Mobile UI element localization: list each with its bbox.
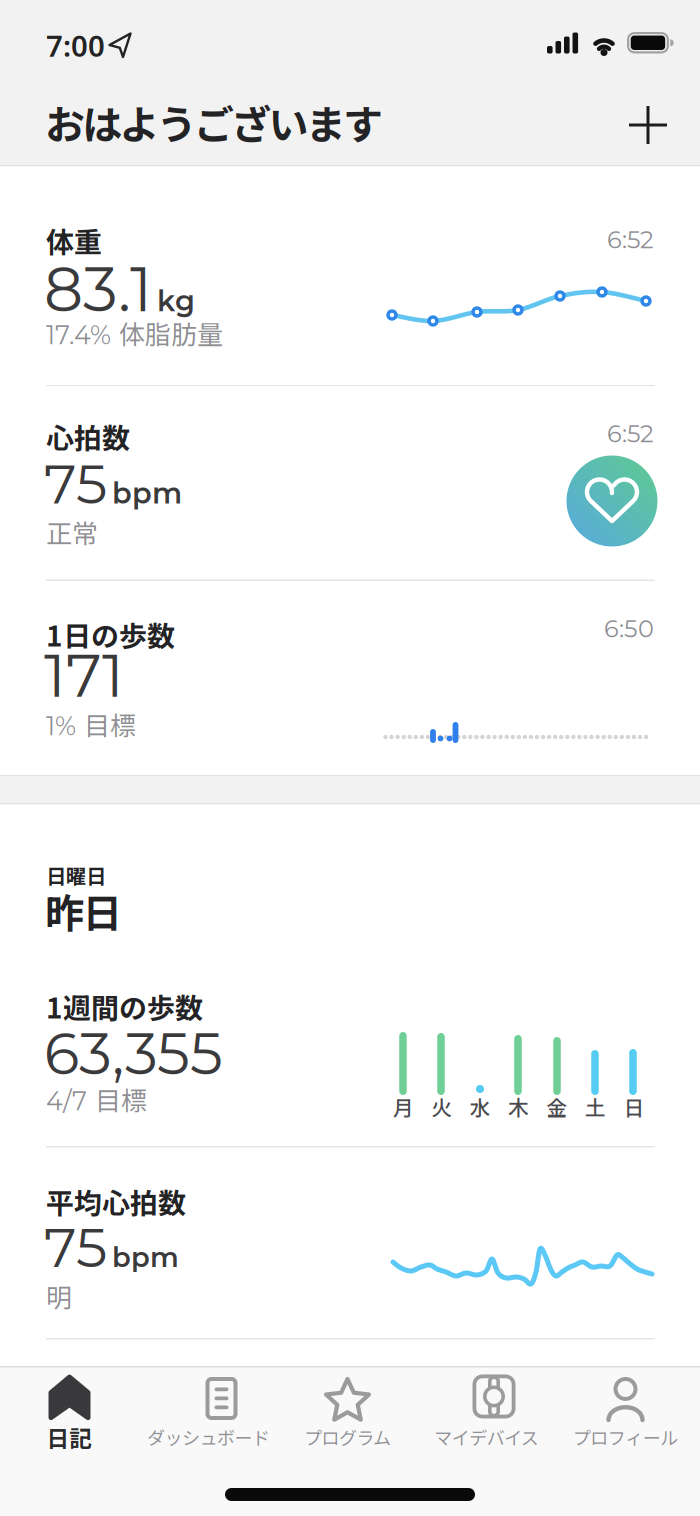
staticText: 月: [393, 1091, 414, 1121]
staticText: 体重: [46, 220, 102, 260]
staticText: 水: [470, 1091, 491, 1121]
staticText: 明: [46, 1277, 72, 1315]
staticText: 日記: [47, 1421, 92, 1453]
staticText: おはようございます: [45, 93, 383, 151]
staticText: マイデバイス: [434, 1424, 539, 1450]
staticText: 昨日: [45, 882, 121, 939]
button[interactable]: 体重: [0, 166, 700, 385]
staticText: 75: [44, 1213, 107, 1281]
staticText: 75: [44, 450, 107, 517]
staticText: 金: [547, 1091, 568, 1121]
button[interactable]: 平均心拍数: [0, 1181, 700, 1338]
staticText: 体脂肪量: [119, 314, 223, 352]
staticText: 1日の歩数: [46, 614, 175, 654]
staticText: 7:00: [46, 26, 105, 65]
staticText: ダッシュボード: [147, 1424, 270, 1450]
staticText: 6:52: [607, 419, 654, 448]
staticText: 正常: [46, 513, 98, 551]
staticText: 63,355: [44, 1018, 223, 1089]
staticText: 日曜日: [46, 860, 106, 889]
staticText: 日: [623, 1091, 644, 1121]
button[interactable]: 日記: [0, 1368, 139, 1458]
staticText: 心拍数: [46, 416, 130, 456]
staticText: kg: [157, 284, 195, 318]
staticText: bpm: [112, 476, 182, 511]
staticText: 6:52: [607, 225, 654, 254]
staticText: bpm: [112, 1241, 179, 1274]
staticText: プログラム: [304, 1424, 391, 1450]
staticText: 1週間の歩数: [46, 986, 203, 1026]
staticText: 目標: [95, 1080, 147, 1118]
button[interactable]: 心拍数: [0, 386, 700, 579]
button[interactable]: プロフィール: [556, 1368, 695, 1458]
button[interactable]: 追加: [622, 100, 674, 150]
staticText: 1%: [46, 711, 76, 741]
staticText: 平均心拍数: [46, 1181, 186, 1221]
button[interactable]: ダッシュボード: [139, 1368, 278, 1458]
staticText: 火: [431, 1091, 452, 1121]
button[interactable]: プログラム: [278, 1368, 417, 1458]
staticText: 木: [508, 1091, 529, 1121]
staticText: 6:50: [604, 614, 654, 643]
staticText: 17.4%: [46, 320, 111, 350]
staticText: 171: [44, 638, 124, 712]
staticText: 目標: [84, 705, 136, 743]
staticText: 4/7: [46, 1086, 87, 1116]
staticText: 土: [585, 1091, 606, 1121]
staticText: プロフィール: [573, 1424, 678, 1450]
staticText: 83.1: [44, 252, 152, 327]
button[interactable]: マイデバイス: [417, 1368, 556, 1458]
button[interactable]: 1週間の歩数: [0, 986, 700, 1146]
button[interactable]: 1日の歩数: [0, 581, 700, 775]
